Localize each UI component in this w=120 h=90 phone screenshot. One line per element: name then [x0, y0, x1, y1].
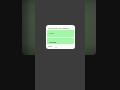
staticText: Add device to network — [48, 27, 70, 30]
button[interactable]: Skip — [48, 45, 52, 48]
staticText: Wi-Fi — [49, 32, 55, 35]
button[interactable]: Wi-Fi — [47, 30, 74, 37]
button[interactable]: ok — [55, 46, 58, 48]
staticText: Name — [49, 40, 57, 43]
button[interactable]: Name — [47, 38, 74, 44]
